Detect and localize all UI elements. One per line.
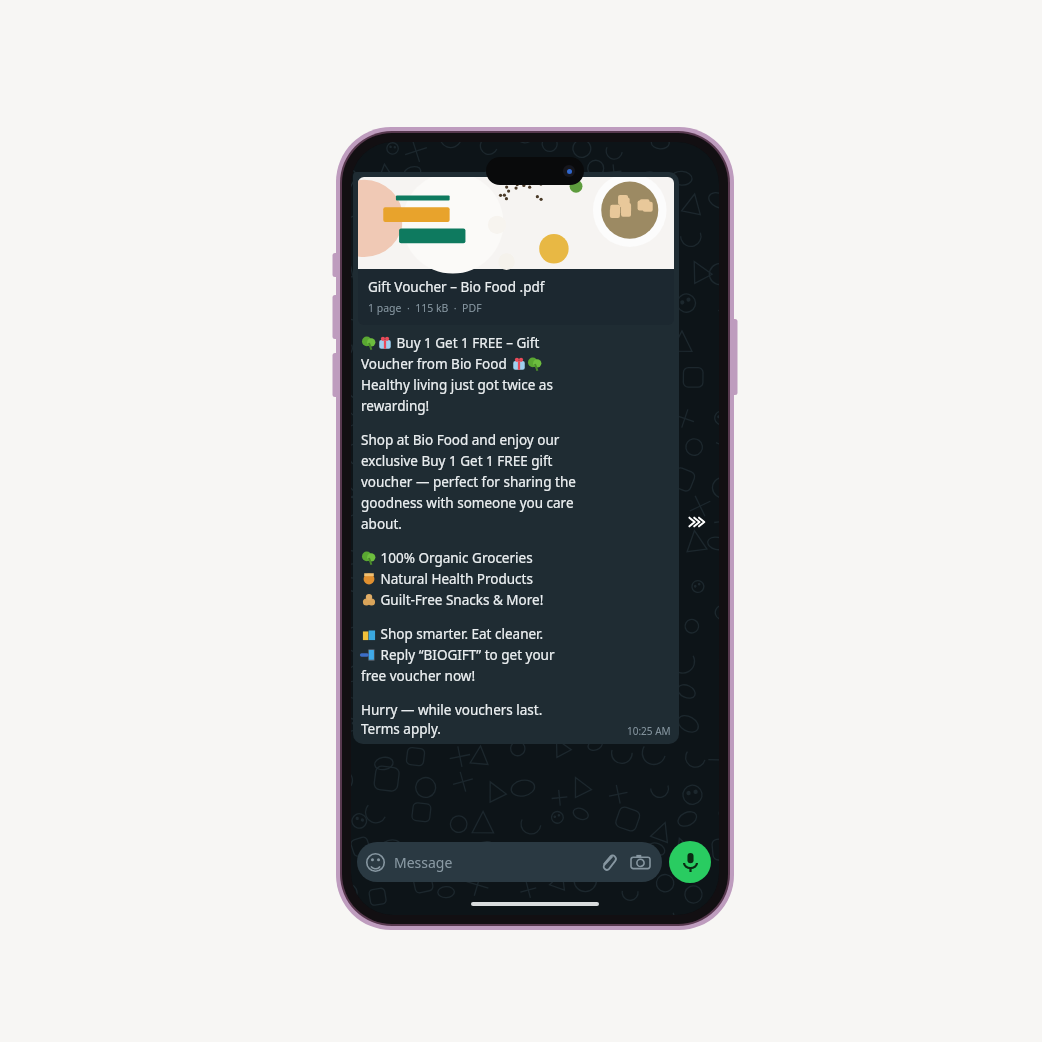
staticText: Shop smarter. Eat cleaner.	[377, 625, 544, 643]
staticText: 100% Organic Groceries	[377, 549, 533, 567]
staticText: Reply “BIOGIFT” to get your	[377, 646, 555, 664]
staticText: 1 page · 115 kB · PDF	[368, 301, 482, 315]
button[interactable]: Voice message	[669, 841, 711, 883]
other: Forwarded	[687, 510, 711, 534]
other: Sticker	[366, 853, 385, 872]
staticText: Terms apply.	[361, 720, 441, 738]
other: Attach	[599, 853, 617, 871]
staticText: goodness with someone you care	[361, 494, 574, 512]
staticText: Buy 1 Get 1 FREE – Gift	[393, 334, 540, 352]
staticText: Healthy living just got twice as	[361, 376, 553, 394]
staticText: Message	[394, 853, 453, 872]
staticText: rewarding!	[361, 397, 430, 415]
staticText: Hurry — while vouchers last.	[361, 701, 543, 719]
button[interactable]: Gift Voucher – Bio Food .pdf	[353, 172, 679, 744]
button[interactable]: Gift Voucher – Bio Food .pdf	[358, 177, 674, 325]
staticText: about.	[361, 515, 402, 533]
staticText: exclusive Buy 1 Get 1 FREE gift	[361, 452, 553, 470]
other: Camera	[631, 853, 650, 872]
staticText: Gift Voucher – Bio Food .pdf	[368, 278, 545, 296]
staticText: Guilt-Free Snacks & More!	[377, 591, 544, 609]
staticText: free voucher now!	[361, 667, 476, 685]
staticText: Shop at Bio Food and enjoy our	[361, 431, 560, 449]
staticText: Natural Health Products	[377, 570, 533, 588]
staticText: 10:25 AM	[627, 724, 671, 738]
staticText: Voucher from Bio Food	[361, 355, 511, 373]
button[interactable]: Sticker	[357, 842, 662, 882]
staticText: voucher — perfect for sharing the	[361, 473, 576, 491]
